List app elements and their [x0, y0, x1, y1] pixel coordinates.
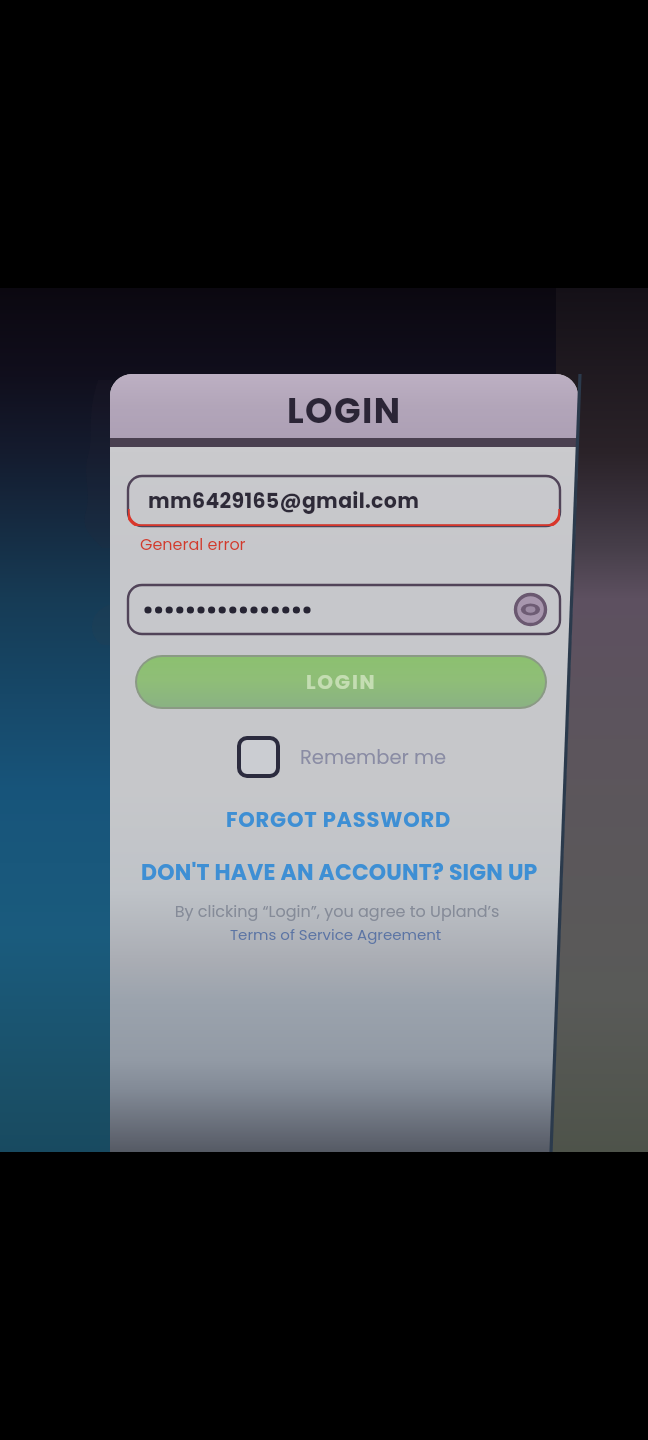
staticText: General error: [140, 533, 246, 555]
button[interactable]: mm6429165@gmail.com: [128, 476, 560, 526]
button[interactable]: LOGIN: [137, 657, 545, 707]
staticText: Terms of Service Agreement: [230, 924, 442, 945]
staticText: LOGIN: [287, 386, 402, 435]
button[interactable]: Show password: [128, 585, 560, 634]
staticText: mm6429165@gmail.com: [148, 486, 420, 515]
staticText: Remember me: [300, 744, 447, 771]
staticText: FORGOT PASSWORD: [226, 805, 452, 834]
staticText: DON'T HAVE AN ACCOUNT? SIGN UP: [141, 857, 538, 888]
button[interactable]: DON'T HAVE AN ACCOUNT? SIGN UP: [110, 856, 573, 888]
button[interactable]: Terms of Service Agreement: [110, 921, 570, 947]
button[interactable]: FORGOT PASSWORD: [110, 803, 573, 835]
button[interactable]: Show password: [513, 592, 548, 627]
button[interactable]: Remember me: [236, 735, 447, 779]
staticText: By clicking “Login”, you agree to Upland…: [110, 900, 571, 922]
staticText: LOGIN: [306, 668, 377, 696]
